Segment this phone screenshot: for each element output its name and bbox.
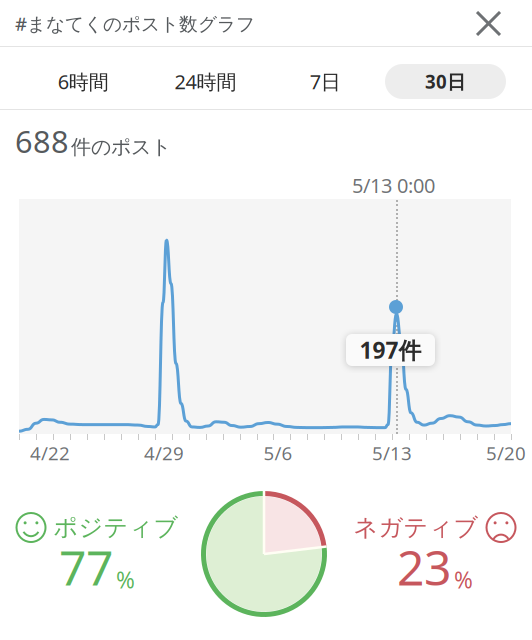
staticText: 件のポスト [71, 135, 171, 159]
button[interactable]: Close [465, 0, 512, 47]
button[interactable]: 7日 [275, 64, 375, 99]
button[interactable]: 30日 [385, 64, 506, 99]
button[interactable]: 24時間 [149, 64, 261, 99]
staticText: ポジティブ [53, 513, 178, 542]
staticText: 30日 [425, 69, 466, 94]
staticText: #まなてくのポスト数グラフ [15, 11, 255, 36]
staticText: ネガティブ [353, 513, 478, 542]
staticText: % [116, 565, 135, 595]
staticText: 24時間 [174, 68, 236, 95]
staticText: 4/29 [144, 441, 184, 465]
staticText: 5/13 0:00 [352, 172, 435, 199]
staticText: 6時間 [58, 68, 109, 95]
staticText: 688 [15, 121, 69, 161]
staticText: 5/13 [372, 441, 412, 465]
staticText: 77 [59, 535, 113, 599]
staticText: % [454, 565, 473, 595]
staticText: 5/20 [486, 441, 526, 465]
staticText: 5/6 [263, 441, 292, 465]
staticText: 23 [397, 535, 451, 599]
staticText: 197件 [359, 335, 421, 365]
staticText: 7日 [310, 68, 341, 95]
button[interactable]: 6時間 [30, 64, 136, 99]
staticText: 4/22 [30, 441, 70, 465]
